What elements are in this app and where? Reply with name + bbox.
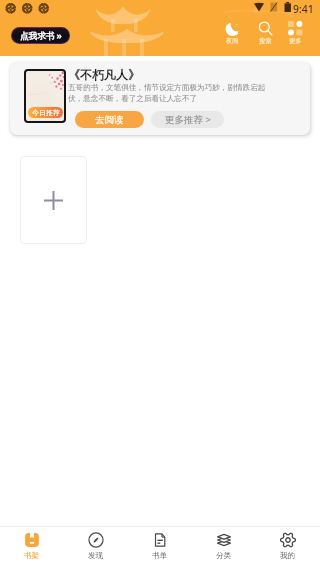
- staticText: 我的: [280, 551, 296, 561]
- button[interactable]: 更多推荐 >: [151, 111, 224, 128]
- staticText: 分类: [216, 551, 232, 561]
- button[interactable]: 发现: [64, 527, 128, 568]
- staticText: 今日推荐: [32, 108, 60, 117]
- staticText: 书单: [152, 551, 168, 561]
- button[interactable]: 分类: [192, 527, 256, 568]
- button[interactable]: 搜索: [255, 21, 275, 45]
- staticText: 发现: [88, 551, 104, 561]
- staticText: 书架: [24, 551, 40, 561]
- staticText: 夜间: [226, 37, 239, 45]
- button[interactable]: 添加书籍: [20, 156, 87, 244]
- staticText: 9:41: [293, 2, 314, 16]
- staticText: 五哥的书，文笔俱佳，情节设定方面极为巧妙，剧情跌宕起伏，悬念不断，看了之后看让人…: [68, 83, 266, 103]
- staticText: 搜索: [259, 37, 272, 45]
- button[interactable]: 更多: [285, 21, 305, 45]
- button[interactable]: 书单: [128, 527, 192, 568]
- button[interactable]: 书架: [0, 527, 64, 568]
- staticText: 《不朽凡人》: [68, 67, 140, 82]
- button[interactable]: 我的: [256, 527, 320, 568]
- staticText: 点我求书 »: [20, 30, 62, 42]
- staticText: 更多推荐 >: [165, 113, 211, 126]
- button[interactable]: 去阅读: [75, 111, 144, 128]
- button[interactable]: 夜间: [222, 21, 242, 45]
- button[interactable]: 今日推荐: [10, 62, 310, 135]
- staticText: 更多: [289, 37, 302, 45]
- staticText: 去阅读: [95, 114, 124, 126]
- button[interactable]: 点我求书 »: [11, 27, 70, 44]
